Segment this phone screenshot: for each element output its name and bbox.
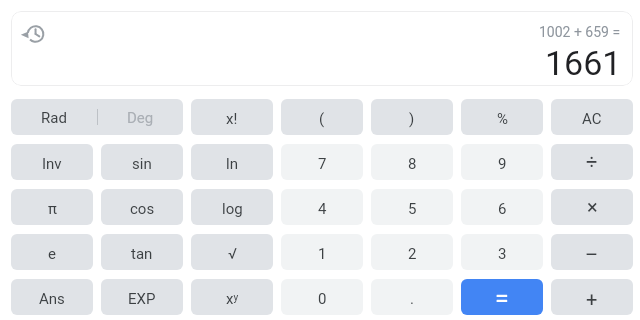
staticText: =: [495, 284, 509, 313]
staticText: Rad: [41, 109, 67, 127]
staticText: ×: [587, 195, 598, 218]
button[interactable]: 2: [371, 234, 453, 270]
button[interactable]: √: [191, 234, 273, 270]
button[interactable]: log: [191, 189, 273, 225]
button[interactable]: π: [11, 189, 93, 225]
staticText: –: [585, 243, 599, 266]
staticText: EXP: [128, 290, 156, 308]
staticText: √: [228, 245, 237, 263]
staticText: 6: [498, 200, 507, 218]
staticText: 0: [318, 290, 327, 308]
staticText: .: [410, 290, 414, 308]
staticText: +: [586, 287, 598, 310]
staticText: xy: [226, 290, 239, 308]
staticText: (: [319, 110, 325, 128]
staticText: 2: [408, 245, 417, 263]
staticText: 1: [318, 245, 327, 263]
staticText: 7: [318, 155, 327, 173]
button[interactable]: e: [11, 234, 93, 270]
staticText: 9: [498, 155, 507, 173]
staticText: 4: [318, 200, 327, 218]
staticText: 3: [498, 245, 507, 263]
staticText: cos: [130, 200, 155, 218]
button[interactable]: cos: [101, 189, 183, 225]
button[interactable]: EXP: [101, 279, 183, 315]
staticText: Ans: [39, 290, 65, 308]
staticText: 1002 + 659 =: [539, 24, 621, 40]
button[interactable]: ): [371, 99, 453, 135]
button[interactable]: Ans: [11, 279, 93, 315]
staticText: e: [48, 245, 56, 263]
button[interactable]: Inv: [11, 144, 93, 180]
staticText: %: [497, 110, 508, 128]
button[interactable]: 9: [461, 144, 543, 180]
button[interactable]: ×: [551, 189, 633, 225]
button[interactable]: =: [461, 279, 543, 315]
staticText: x!: [226, 110, 238, 128]
button[interactable]: 5: [371, 189, 453, 225]
staticText: ÷: [586, 150, 598, 173]
button[interactable]: 8: [371, 144, 453, 180]
button[interactable]: x!: [191, 99, 273, 135]
staticText: 8: [408, 155, 417, 173]
staticText: AC: [582, 110, 602, 128]
button[interactable]: AC: [551, 99, 633, 135]
button[interactable]: 1: [281, 234, 363, 270]
button[interactable]: Rad: [11, 99, 97, 135]
button[interactable]: xy: [191, 279, 273, 315]
button[interactable]: (: [281, 99, 363, 135]
staticText: ln: [226, 155, 238, 173]
button[interactable]: ÷: [551, 144, 633, 180]
staticText: Inv: [42, 155, 62, 173]
staticText: Deg: [127, 109, 154, 127]
button[interactable]: %: [461, 99, 543, 135]
button[interactable]: 7: [281, 144, 363, 180]
button[interactable]: History: [17, 17, 51, 51]
staticText: 5: [408, 200, 417, 218]
staticText: π: [48, 200, 57, 218]
button[interactable]: +: [551, 279, 633, 315]
button[interactable]: Deg: [97, 99, 183, 135]
button[interactable]: sin: [101, 144, 183, 180]
button[interactable]: 3: [461, 234, 543, 270]
button[interactable]: ln: [191, 144, 273, 180]
staticText: ): [409, 110, 415, 128]
button[interactable]: tan: [101, 234, 183, 270]
button[interactable]: 6: [461, 189, 543, 225]
button[interactable]: –: [551, 234, 633, 270]
button[interactable]: 4: [281, 189, 363, 225]
button[interactable]: .: [371, 279, 453, 315]
staticText: log: [222, 200, 243, 218]
staticText: 1661: [545, 43, 622, 83]
button[interactable]: 0: [281, 279, 363, 315]
staticText: sin: [132, 155, 152, 173]
staticText: tan: [131, 245, 153, 263]
